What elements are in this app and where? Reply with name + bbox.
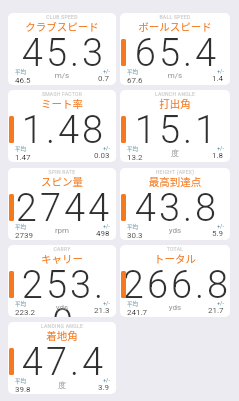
staticText: ミート率 (8, 96, 116, 111)
staticText: 平均 (15, 300, 27, 308)
staticText: yds (8, 303, 116, 312)
staticText: 15.1 (122, 108, 230, 153)
staticText: 2739 (15, 231, 33, 240)
staticText: +/- (217, 68, 224, 74)
staticText: m/s (8, 71, 116, 80)
staticText: m/s (120, 71, 230, 80)
staticText: 平均 (15, 145, 27, 153)
button[interactable]: SMASH FACTOR (8, 90, 116, 162)
staticText (8, 148, 116, 157)
staticText: スピン量 (8, 174, 116, 189)
staticText: yds (120, 303, 230, 312)
staticText: 21.7 (208, 306, 224, 315)
staticText: 平均 (15, 223, 27, 231)
staticText: HEIGHT (APEX) (120, 169, 230, 175)
staticText: 平均 (127, 145, 139, 153)
staticText: 3.9 (98, 383, 110, 392)
staticText: +/- (103, 145, 110, 151)
staticText: 30.3 (127, 231, 143, 240)
button[interactable]: LANDING ANGLE (8, 322, 116, 394)
staticText: SMASH FACTOR (8, 91, 116, 97)
button[interactable]: CLUB SPEED (8, 13, 116, 85)
staticText: 平均 (127, 223, 139, 231)
staticText: 253.0 (10, 263, 116, 317)
staticText: BALL SPEED (120, 14, 230, 20)
staticText: 度 (120, 148, 230, 158)
staticText: +/- (103, 68, 110, 74)
staticText: 241.7 (127, 308, 148, 317)
staticText: 平均 (15, 377, 27, 385)
staticText: ボールスピード (120, 19, 230, 34)
staticText: +/- (103, 377, 110, 383)
staticText: CLUB SPEED (8, 14, 116, 20)
staticText: キャリー (8, 251, 116, 266)
staticText: CARRY (8, 246, 116, 252)
staticText: 打出角 (120, 96, 230, 111)
staticText: 39.8 (15, 385, 31, 394)
button[interactable]: CARRY (8, 245, 116, 317)
staticText: 1.47 (15, 153, 31, 162)
button[interactable]: HEIGHT (APEX) (120, 168, 230, 240)
staticText: 1.8 (212, 151, 224, 160)
staticText: TOTAL (120, 246, 230, 252)
staticText: 43.8 (122, 186, 230, 231)
staticText: yds (120, 226, 230, 235)
staticText: 平均 (127, 300, 139, 308)
button[interactable]: TOTAL (120, 245, 230, 317)
staticText: 2744 (10, 186, 116, 231)
staticText: 47.4 (10, 340, 116, 385)
staticText: +/- (217, 223, 224, 229)
staticText: 21.3 (94, 306, 110, 315)
staticText: LAUNCH ANGLE (120, 91, 230, 97)
staticText: 着地角 (8, 328, 116, 343)
button[interactable]: LAUNCH ANGLE (120, 90, 230, 162)
staticText: 498 (96, 229, 110, 238)
staticText: +/- (103, 300, 110, 306)
staticText: +/- (217, 145, 224, 151)
staticText: +/- (217, 300, 224, 306)
staticText: 度 (8, 380, 116, 390)
staticText: 45.3 (10, 31, 116, 76)
staticText: 1.4 (212, 74, 224, 83)
staticText: 1.48 (10, 108, 116, 153)
staticText: 最高到達点 (120, 174, 230, 189)
staticText: 平均 (15, 68, 27, 76)
staticText: 46.5 (15, 76, 31, 85)
staticText: 0.7 (98, 74, 110, 83)
staticText: 0.03 (94, 151, 110, 160)
staticText: LANDING ANGLE (8, 323, 116, 329)
staticText: 65.4 (122, 31, 230, 76)
staticText: クラブスピード (8, 19, 116, 34)
staticText: トータル (120, 251, 230, 266)
staticText: rpm (8, 226, 116, 235)
staticText: 67.6 (127, 76, 143, 85)
staticText: 平均 (127, 68, 139, 76)
staticText: 266.8 (122, 263, 230, 308)
staticText: 223.2 (15, 308, 36, 317)
staticText: 5.9 (212, 229, 224, 238)
staticText: +/- (103, 223, 110, 229)
button[interactable]: BALL SPEED (120, 13, 230, 85)
button[interactable]: SPIN RATE (8, 168, 116, 240)
staticText: 13.2 (127, 153, 143, 162)
staticText: SPIN RATE (8, 169, 116, 175)
